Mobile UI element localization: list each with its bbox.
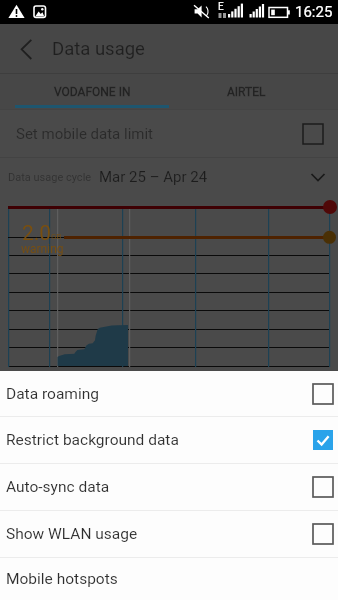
staticText: Mar 25 – Apr 24 bbox=[99, 168, 208, 186]
staticText: GB bbox=[51, 232, 62, 241]
staticText: Show WLAN usage bbox=[6, 525, 138, 543]
staticText: VODAFONE IN bbox=[54, 85, 131, 99]
button[interactable]: Mobile hotspots bbox=[0, 558, 338, 600]
button[interactable]: Show WLAN usage bbox=[0, 511, 338, 557]
staticText: 2.0 bbox=[22, 221, 52, 246]
staticText: Set mobile data limit bbox=[16, 125, 153, 143]
button[interactable]: AIRTEL bbox=[169, 74, 323, 109]
button[interactable]: Back bbox=[0, 24, 338, 73]
staticText: warning bbox=[21, 242, 64, 256]
button[interactable]: Auto-sync data bbox=[0, 464, 338, 510]
button[interactable]: Data roaming bbox=[0, 371, 338, 416]
staticText: Data usage cycle bbox=[8, 171, 92, 184]
button[interactable]: Back bbox=[0, 24, 49, 73]
staticText: E bbox=[218, 1, 224, 13]
staticText: Restrict background data bbox=[6, 431, 179, 449]
staticText: Mobile hotspots bbox=[6, 570, 118, 588]
button[interactable]: VODAFONE IN bbox=[15, 74, 169, 109]
button[interactable]: Data usage cycle bbox=[0, 158, 338, 196]
staticText: Auto-sync data bbox=[6, 478, 110, 496]
staticText: Data roaming bbox=[6, 385, 99, 403]
staticText: Data usage bbox=[52, 38, 145, 60]
button[interactable]: Set mobile data limit bbox=[0, 110, 338, 157]
button[interactable]: Set mobile data limit bbox=[295, 116, 331, 152]
button[interactable]: Restrict background data bbox=[0, 417, 338, 463]
button[interactable]: Choose cycle bbox=[298, 158, 338, 196]
staticText: 16:25 bbox=[295, 3, 333, 21]
staticText: AIRTEL bbox=[227, 85, 266, 99]
